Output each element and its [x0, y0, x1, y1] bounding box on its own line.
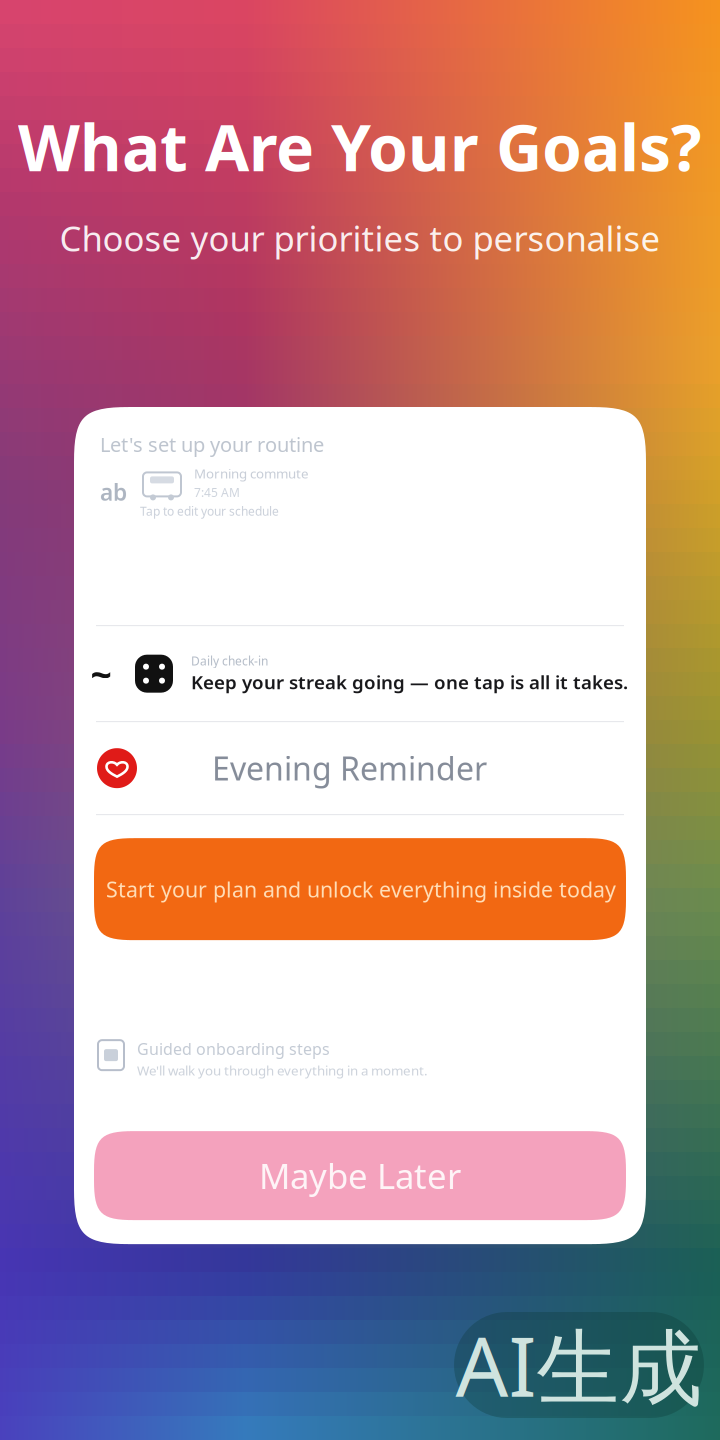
staticText: ab [100, 477, 127, 507]
staticText: Let's set up your routine [100, 431, 324, 458]
staticText: What Are Your Goals? [18, 104, 702, 189]
staticText: Tap to edit your schedule [140, 503, 279, 519]
button[interactable]: Maybe Later [94, 1131, 626, 1220]
staticText: Keep your streak going — one tap is all … [191, 670, 628, 694]
staticText: Maybe Later [259, 1153, 461, 1199]
staticText: Morning commute [194, 465, 309, 482]
staticText: Guided onboarding steps [137, 1038, 330, 1059]
staticText: Start your plan and unlock everything in… [106, 875, 616, 903]
staticText: 7:45 AM [194, 484, 240, 500]
staticText: ~ [90, 649, 111, 698]
staticText: AI生成 [455, 1310, 702, 1420]
staticText: Choose your priorities to personalise [59, 215, 660, 261]
staticText: Daily check-in [191, 653, 268, 669]
staticText: Evening Reminder [212, 747, 487, 789]
staticText: We'll walk you through everything in a m… [137, 1061, 428, 1079]
button[interactable]: Evening Reminder [74, 722, 646, 814]
button[interactable]: Start your plan and unlock everything in… [94, 838, 626, 940]
